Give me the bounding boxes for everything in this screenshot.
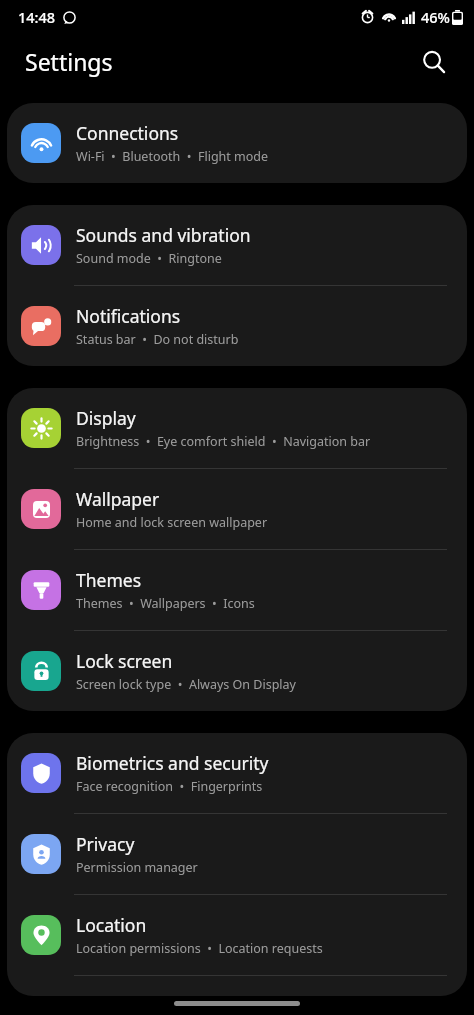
staticText: Brightness • Eye comfort shield • Naviga… [76,433,371,450]
button[interactable]: Sounds and vibration [7,205,467,285]
staticText: Screen lock type • Always On Display [76,676,296,693]
staticText: Location permissions • Location requests [76,940,323,957]
staticText: Sounds and vibration [76,223,251,247]
button[interactable]: Connections [7,103,467,183]
staticText: Settings [25,46,113,77]
staticText: Sound mode • Ringtone [76,250,222,267]
staticText: 14:48 [18,7,56,27]
staticText: Biometrics and security [76,751,269,775]
staticText: Notifications [76,304,181,328]
button[interactable]: Biometrics and security [7,733,467,813]
button[interactable]: Themes [7,550,467,630]
button[interactable]: Privacy [7,814,467,894]
staticText: Face recognition • Fingerprints [76,778,263,795]
staticText: Status bar • Do not disturb [76,331,239,348]
staticText: Connections [76,121,179,145]
staticText: Wi-Fi • Bluetooth • Flight mode [76,148,269,165]
staticText: Privacy [76,832,135,856]
staticText: Lock screen [76,649,173,673]
staticText: Permission manager [76,859,198,876]
staticText: Wallpaper [76,487,160,511]
staticText: Display [76,406,136,430]
staticText: Location [76,913,147,937]
staticText: Themes [76,568,142,592]
staticText: Home and lock screen wallpaper [76,514,268,531]
button[interactable]: Lock screen [7,631,467,711]
button[interactable]: Display [7,388,467,468]
staticText: 46% [421,7,450,27]
button[interactable]: Notifications [7,286,467,366]
staticText: Themes • Wallpapers • Icons [76,595,255,612]
button[interactable]: Wallpaper [7,469,467,549]
button[interactable]: Search [412,40,456,84]
button[interactable]: Location [7,895,467,975]
